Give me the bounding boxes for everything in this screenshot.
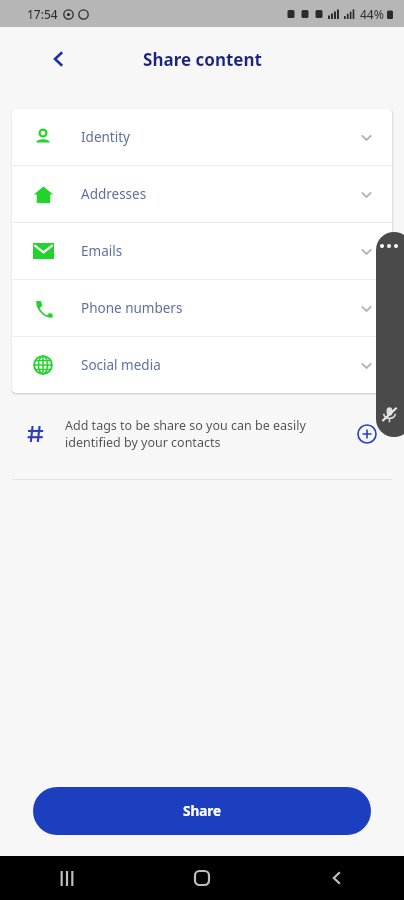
staticText: Share content [143,48,262,71]
staticText: Phone numbers [81,299,183,317]
button[interactable]: Add tag [352,419,382,449]
staticText: Add tags to be share so you can be easil… [65,417,342,451]
staticText: Share [183,802,222,820]
button[interactable]: Back [313,856,361,900]
button[interactable]: Emails [12,223,392,279]
button[interactable]: Screen recorder controls [376,232,404,437]
button[interactable]: Add tags to be share so you can be easil… [0,411,404,457]
staticText: 17:54 [27,6,58,22]
staticText: Identity [81,128,130,146]
staticText: Social media [81,356,161,374]
button[interactable]: Identity [12,109,392,165]
button[interactable]: Phone numbers [12,280,392,336]
staticText: 44% [360,6,384,22]
button[interactable]: Recents [43,856,91,900]
button[interactable]: Home [178,856,226,900]
staticText: Addresses [81,185,147,203]
button[interactable]: Share [33,787,371,835]
staticText: Emails [81,242,123,260]
button[interactable]: Back [42,42,76,76]
button[interactable]: Addresses [12,166,392,222]
button[interactable]: Social media [12,337,392,393]
